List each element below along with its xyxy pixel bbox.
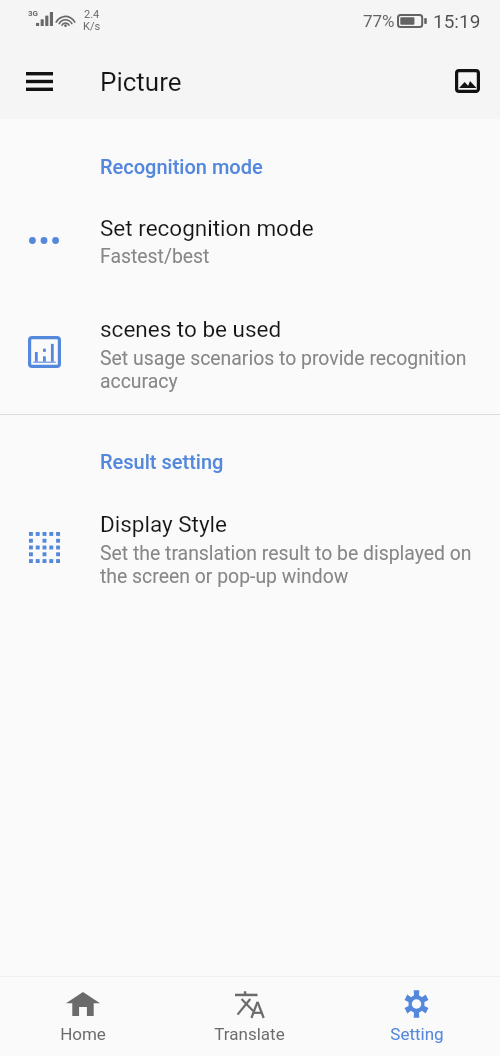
button[interactable]: Menu [13,55,65,107]
button[interactable]: Gallery [443,57,491,105]
staticText: scenes to be used [100,316,282,342]
staticText: K/s [83,20,101,33]
button[interactable]: Home [0,977,166,1056]
staticText: Setting [390,1024,444,1044]
button[interactable]: Set recognition mode [0,206,500,276]
button[interactable]: Translate [166,977,333,1056]
staticText: 3G [28,9,39,18]
staticText: 77% [363,11,395,31]
staticText: Result setting [100,450,224,473]
staticText: Set recognition mode [100,215,314,241]
staticText: Picture [100,67,182,97]
staticText: Recognition mode [100,155,263,178]
button[interactable]: scenes to be used [0,308,500,398]
staticText: Set the translation result to be display… [100,542,474,588]
staticText: 15:19 [433,10,481,32]
staticText: Translate [214,1024,285,1044]
button[interactable]: Display Style [0,502,500,594]
button[interactable]: Setting [333,977,500,1056]
staticText: Home [60,1024,106,1044]
staticText: Set usage scenarios to provide recogniti… [100,347,474,393]
staticText: 2.4 [84,8,100,21]
staticText: Fastest/best [100,245,474,268]
staticText: Display Style [100,511,228,537]
